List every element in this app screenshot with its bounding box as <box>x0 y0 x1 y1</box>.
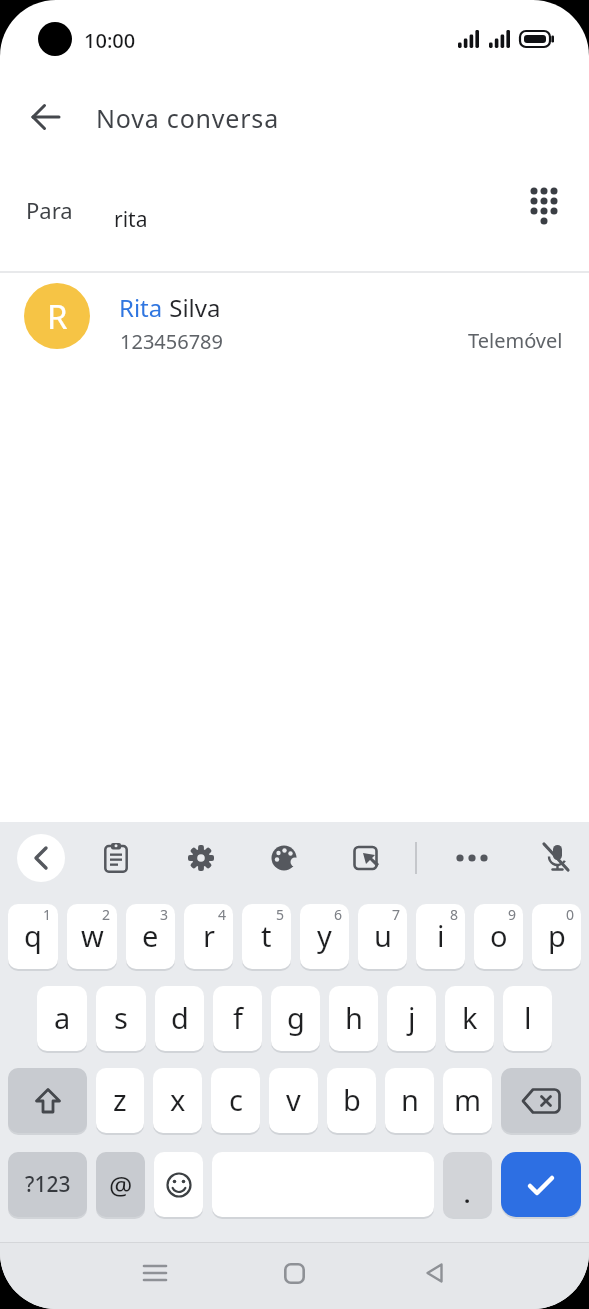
staticText: Rita <box>119 291 163 324</box>
staticText: y <box>317 916 332 955</box>
button[interactable]: x <box>153 1068 202 1133</box>
staticText: u <box>374 916 392 955</box>
button[interactable] <box>410 1249 458 1297</box>
staticText: c <box>229 1080 243 1119</box>
button[interactable]: b <box>327 1068 376 1133</box>
staticText: l <box>524 998 532 1037</box>
staticText: 1 <box>43 905 52 924</box>
button[interactable] <box>522 183 566 227</box>
staticText: h <box>345 998 363 1037</box>
button[interactable]: c <box>211 1068 260 1133</box>
staticText: w <box>81 916 104 955</box>
staticText: rita <box>114 205 148 234</box>
staticText: ?123 <box>25 1170 71 1199</box>
button[interactable] <box>8 1068 87 1133</box>
button[interactable]: t <box>242 904 291 969</box>
staticText: k <box>462 998 478 1037</box>
staticText: Para <box>26 195 73 225</box>
staticText: d <box>171 998 189 1037</box>
button[interactable]: k <box>445 986 494 1051</box>
button[interactable]: @ <box>96 1152 145 1217</box>
staticText: v <box>286 1080 301 1119</box>
staticText: e <box>142 916 159 955</box>
button[interactable]: g <box>271 986 320 1051</box>
staticText: o <box>490 916 508 955</box>
staticText: b <box>343 1080 361 1119</box>
staticText: f <box>233 998 243 1037</box>
staticText: a <box>54 998 71 1037</box>
staticText: 2 <box>102 905 111 924</box>
staticText: Silva <box>163 291 221 324</box>
button[interactable]: ?123 <box>8 1152 87 1217</box>
button[interactable]: z <box>96 1068 144 1133</box>
button[interactable]: q <box>8 904 58 969</box>
staticText: s <box>114 998 128 1037</box>
button[interactable]: s <box>96 986 146 1051</box>
button[interactable]: a <box>37 986 87 1051</box>
button[interactable]: R <box>0 276 589 356</box>
staticText: 8 <box>450 905 459 924</box>
button[interactable]: o <box>474 904 523 969</box>
staticText: 5 <box>276 905 285 924</box>
button[interactable] <box>264 838 304 878</box>
button[interactable]: i <box>416 904 465 969</box>
staticText: r <box>203 916 215 955</box>
staticText: x <box>170 1080 186 1119</box>
button[interactable] <box>347 838 387 878</box>
staticText: z <box>113 1080 127 1119</box>
staticText: 9 <box>508 905 517 924</box>
button[interactable]: . <box>443 1152 492 1217</box>
staticText: @ <box>109 1167 133 1202</box>
button[interactable]: j <box>387 986 436 1051</box>
button[interactable]: l <box>503 986 552 1051</box>
button[interactable] <box>181 838 221 878</box>
staticText: Nova conversa <box>96 101 279 135</box>
staticText: 3 <box>160 905 169 924</box>
staticText: Telemóvel <box>468 327 563 354</box>
staticText: 4 <box>218 905 227 924</box>
button[interactable]: u <box>358 904 407 969</box>
button[interactable]: p <box>532 904 581 969</box>
button[interactable] <box>270 1249 318 1297</box>
button[interactable]: w <box>67 904 117 969</box>
staticText: . <box>464 1179 471 1209</box>
button[interactable]: d <box>155 986 204 1051</box>
staticText: i <box>437 916 445 955</box>
button[interactable] <box>501 1152 581 1217</box>
button[interactable] <box>131 1249 179 1297</box>
button[interactable] <box>536 838 576 878</box>
staticText: 123456789 <box>120 328 223 355</box>
staticText: m <box>454 1080 482 1119</box>
staticText: p <box>548 916 566 955</box>
button[interactable] <box>96 838 136 878</box>
button[interactable]: f <box>213 986 262 1051</box>
button[interactable]: m <box>443 1068 492 1133</box>
staticText: 6 <box>334 905 343 924</box>
button[interactable] <box>17 834 65 882</box>
staticText: j <box>408 998 416 1037</box>
staticText: n <box>401 1080 419 1119</box>
button[interactable] <box>452 838 492 878</box>
button[interactable]: h <box>329 986 378 1051</box>
button[interactable] <box>501 1068 581 1133</box>
button[interactable] <box>154 1152 203 1217</box>
button[interactable]: v <box>269 1068 318 1133</box>
button[interactable] <box>24 95 68 139</box>
staticText: g <box>287 998 305 1037</box>
button[interactable]: y <box>300 904 349 969</box>
staticText: 10:00 <box>84 27 136 54</box>
staticText: R <box>47 294 68 339</box>
staticText: 0 <box>566 905 575 924</box>
staticText: 7 <box>392 905 401 924</box>
staticText: t <box>261 916 272 955</box>
staticText: q <box>24 916 42 955</box>
button[interactable]: n <box>385 1068 434 1133</box>
button[interactable]: r <box>184 904 233 969</box>
button[interactable]: e <box>126 904 175 969</box>
